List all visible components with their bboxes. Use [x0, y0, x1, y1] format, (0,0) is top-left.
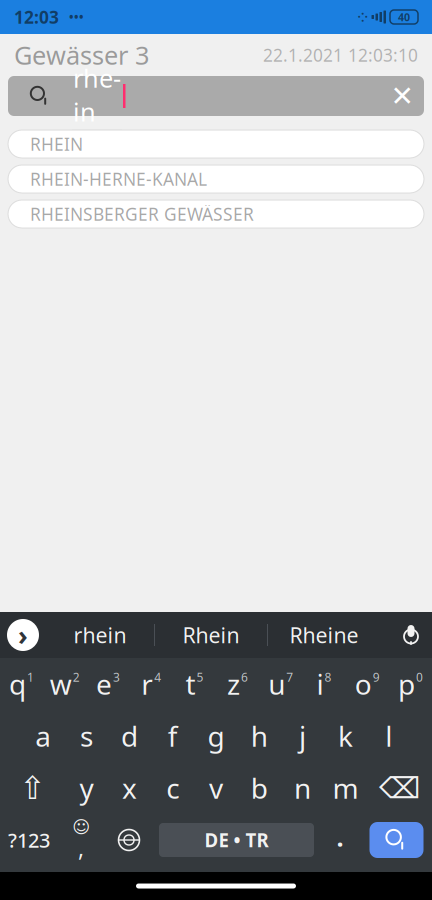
button[interactable]: ?123	[0, 814, 58, 866]
staticText: o	[355, 665, 372, 703]
staticText: ,	[78, 833, 84, 863]
staticText: d	[121, 717, 138, 755]
staticText: 5	[196, 669, 203, 685]
button[interactable]: s	[65, 713, 108, 759]
button[interactable]: RHEIN	[8, 130, 424, 158]
button[interactable]: k	[324, 713, 367, 759]
button[interactable]: Shift	[0, 762, 65, 814]
button[interactable]: b	[238, 765, 281, 811]
staticText: p	[398, 665, 415, 703]
button[interactable]: Rhein	[155, 612, 267, 658]
button[interactable]: Change keyboard language	[104, 814, 154, 866]
button[interactable]: Voice input	[390, 612, 432, 658]
staticText: 1	[27, 669, 34, 685]
staticText: c	[166, 769, 179, 807]
staticText: rhein	[73, 621, 126, 649]
button[interactable]: q	[0, 661, 43, 707]
button[interactable]: l	[367, 713, 410, 759]
staticText: r	[141, 665, 153, 703]
staticText: Gewässer 3	[14, 38, 149, 72]
staticText: 2	[73, 669, 80, 685]
staticText: 12:03	[14, 5, 59, 28]
staticText: 7	[286, 669, 293, 685]
button[interactable]: Rheine	[268, 612, 380, 658]
button[interactable]: c	[151, 765, 194, 811]
staticText: a	[35, 717, 51, 755]
button[interactable]: z	[216, 661, 259, 707]
button[interactable]: u	[259, 661, 302, 707]
button[interactable]: h	[238, 713, 281, 759]
button[interactable]: Expand toolbar	[0, 612, 46, 658]
button[interactable]: g	[194, 713, 238, 759]
staticText: k	[338, 717, 353, 755]
staticText: •••	[69, 9, 84, 25]
button[interactable]: e	[86, 661, 130, 707]
button[interactable]: Period	[319, 814, 361, 866]
staticText: x	[122, 769, 137, 807]
staticText: q	[9, 665, 26, 703]
staticText: v	[209, 769, 223, 807]
button[interactable]: i	[302, 661, 346, 707]
staticText: 0	[416, 669, 423, 685]
button[interactable]: d	[108, 713, 151, 759]
staticText: m	[333, 769, 359, 807]
staticText: z	[227, 665, 240, 703]
button[interactable]: w	[43, 661, 86, 707]
staticText: RHEIN-HERNE-KANAL	[30, 167, 207, 190]
staticText: 4	[154, 669, 161, 685]
staticText: l	[385, 717, 392, 755]
staticText: g	[207, 717, 224, 755]
staticText: w	[50, 665, 72, 703]
staticText: ✕	[390, 80, 413, 112]
staticText: 22.1.2021 12:03:10	[263, 43, 418, 66]
staticText: ›	[18, 617, 28, 653]
staticText: y	[79, 769, 93, 807]
staticText: rhein	[73, 61, 121, 128]
button[interactable]: m	[324, 765, 367, 811]
button[interactable]: Space	[154, 814, 319, 866]
staticText: n	[294, 769, 311, 807]
button[interactable]: y	[65, 765, 108, 811]
staticText: DE • TR	[204, 828, 268, 852]
staticText: u	[268, 665, 285, 703]
button[interactable]: x	[108, 765, 151, 811]
staticText: RHEIN	[30, 132, 83, 155]
button[interactable]: r	[130, 661, 173, 707]
button[interactable]: t	[173, 661, 216, 707]
staticText: .	[336, 820, 343, 854]
staticText: ?123	[8, 827, 50, 853]
staticText: f	[168, 717, 178, 755]
staticText: 40	[398, 10, 410, 24]
button[interactable]: n	[281, 765, 324, 811]
staticText: s	[80, 717, 93, 755]
button[interactable]: Backspace	[367, 762, 432, 814]
staticText: 3	[113, 669, 120, 685]
staticText: Rhein	[182, 621, 239, 649]
button[interactable]: a	[22, 713, 65, 759]
button[interactable]: Emoji and comma	[58, 814, 104, 866]
button[interactable]: p	[389, 661, 432, 707]
button[interactable]: v	[194, 765, 238, 811]
staticText: e	[96, 665, 112, 703]
button[interactable]: RHEIN-HERNE-KANAL	[8, 165, 424, 193]
staticText: ☺	[72, 817, 90, 837]
staticText: 6	[241, 669, 248, 685]
staticText: Rheine	[289, 621, 358, 649]
button[interactable]: f	[151, 713, 194, 759]
staticText: t	[185, 665, 195, 703]
staticText: 9	[373, 669, 380, 685]
staticText: h	[251, 717, 268, 755]
staticText: i	[316, 665, 323, 703]
button[interactable]: Search	[361, 814, 432, 866]
staticText: 8	[324, 669, 331, 685]
button[interactable]: o	[346, 661, 389, 707]
staticText: ⌫	[379, 771, 420, 805]
staticText: b	[251, 769, 268, 807]
staticText: RHEINSBERGER GEWÄSSER	[30, 202, 254, 225]
button[interactable]: RHEINSBERGER GEWÄSSER	[8, 200, 424, 228]
button[interactable]: Clear search	[380, 74, 424, 118]
staticText: j	[299, 717, 306, 755]
button[interactable]: j	[281, 713, 324, 759]
staticText: ⇧	[19, 770, 46, 806]
button[interactable]: rhein	[46, 612, 154, 658]
